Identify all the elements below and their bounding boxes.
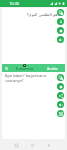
button[interactable]: Listen <box>57 101 64 108</box>
button[interactable]: Copy <box>57 74 64 81</box>
button[interactable]: Listen <box>57 36 64 43</box>
staticText: Apa kabar? bagaimana cuacanya? <box>5 73 46 83</box>
button[interactable]: Indonesia <box>16 64 65 72</box>
staticText: Arabic <box>47 66 58 71</box>
button[interactable]: Copy <box>57 9 64 16</box>
button[interactable]: Home <box>27 140 37 150</box>
staticText: ما هو الطقس اليوم؟ <box>26 12 62 18</box>
staticText: Indonesia <box>16 66 34 71</box>
button[interactable]: Fullscreen <box>57 110 64 117</box>
button[interactable]: Bookmark <box>57 27 64 34</box>
button[interactable]: Recents <box>11 140 21 150</box>
button[interactable]: Share <box>57 92 64 99</box>
button[interactable]: Back <box>43 140 53 150</box>
button[interactable]: Menu <box>3 65 9 71</box>
button[interactable]: Save <box>57 18 64 25</box>
button[interactable]: Bookmark <box>57 83 64 90</box>
button[interactable]: Arabic <box>47 64 58 69</box>
staticText: 10:30 <box>9 1 20 6</box>
